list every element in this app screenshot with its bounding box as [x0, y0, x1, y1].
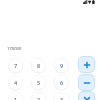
other: Status icons	[83, 0, 95, 4]
staticText: 170000	[7, 46, 22, 52]
button[interactable]: 8	[31, 58, 46, 73]
staticText: 7	[14, 62, 18, 69]
staticText: 5	[37, 79, 41, 86]
button[interactable]: Add	[78, 56, 95, 73]
staticText: 9	[60, 62, 64, 69]
button[interactable]: 3	[54, 92, 69, 100]
button[interactable]: 6	[54, 75, 69, 90]
staticText: 2	[37, 96, 41, 100]
button[interactable]: 1	[8, 92, 23, 100]
button[interactable]: 9	[54, 58, 69, 73]
staticText: 1	[14, 96, 18, 100]
staticText: 3	[60, 96, 64, 100]
button[interactable]: 5	[31, 75, 46, 90]
button[interactable]: Multiply	[78, 91, 95, 100]
staticText: 6	[60, 79, 64, 86]
staticText: 8	[37, 62, 41, 69]
staticText: 4	[14, 79, 18, 86]
button[interactable]: 4	[8, 75, 23, 90]
button[interactable]: 7	[8, 58, 23, 73]
button[interactable]: Subtract	[78, 74, 95, 91]
button[interactable]: 2	[31, 92, 46, 100]
